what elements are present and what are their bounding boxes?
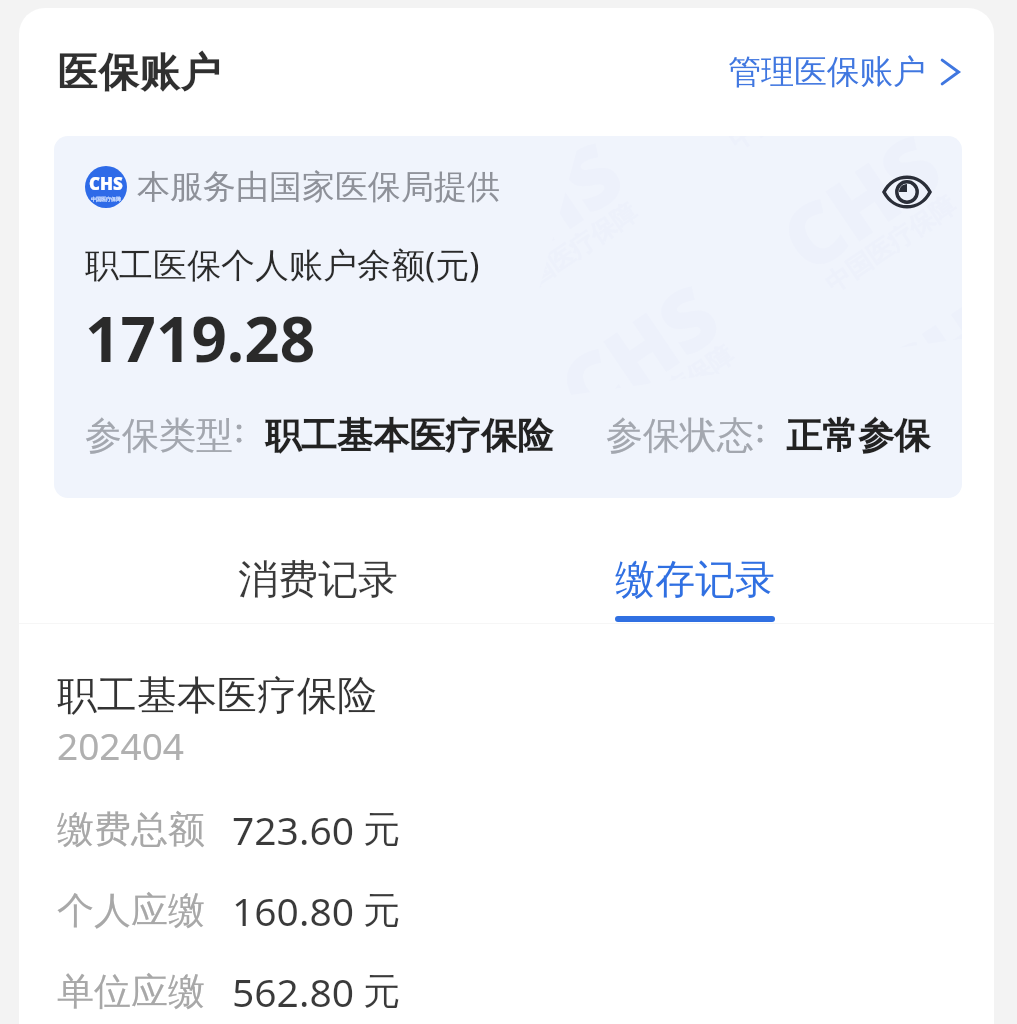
- staticText: 医保账户: [57, 47, 221, 97]
- staticText: 元: [363, 887, 400, 934]
- staticText: 消费记录: [238, 554, 398, 604]
- staticText: 1719.28: [85, 296, 316, 380]
- staticText: 管理医保账户: [728, 51, 926, 93]
- staticText: 元: [363, 968, 400, 1015]
- staticText: 中国医疗保障: [91, 196, 121, 202]
- staticText: 正常参保: [786, 413, 930, 458]
- staticText: 元: [363, 806, 400, 853]
- staticText: 562.80: [232, 965, 354, 1018]
- staticText: 职工医保个人账户余额(元): [85, 241, 480, 287]
- button[interactable]: 职工基本医疗保险: [19, 624, 994, 1024]
- staticText: CHS: [89, 172, 123, 195]
- staticText: 参保状态: [606, 412, 754, 459]
- staticText: 职工基本医疗保险: [57, 670, 377, 720]
- staticText: 缴存记录: [615, 554, 775, 604]
- staticText: 本服务由国家医保局提供: [137, 166, 500, 208]
- staticText: 参保类型: [85, 412, 233, 459]
- staticText: 个人应缴: [57, 887, 205, 934]
- staticText: 160.80: [232, 884, 354, 937]
- staticText: 缴费总额: [57, 806, 205, 853]
- staticText: 202404: [57, 720, 184, 770]
- button[interactable]: Toggle balance visibility: [882, 167, 932, 217]
- staticText: 单位应缴: [57, 968, 205, 1015]
- button[interactable]: 消费记录: [129, 498, 506, 624]
- button[interactable]: 管理医保账户: [728, 51, 994, 93]
- staticText: 723.60: [232, 803, 354, 856]
- staticText: 职工基本医疗保险: [265, 413, 553, 458]
- button[interactable]: 缴存记录: [506, 498, 884, 624]
